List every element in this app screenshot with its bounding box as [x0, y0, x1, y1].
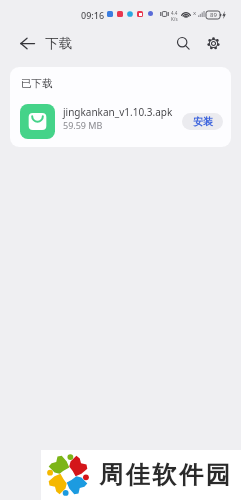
button[interactable]: Search [171, 31, 195, 55]
staticText: K/s [171, 16, 178, 22]
button[interactable]: Settings [201, 31, 225, 55]
button[interactable]: jingkankan_v1.10.3.apk [10, 99, 231, 143]
staticText: 89 [210, 11, 217, 19]
button[interactable]: 安装 [182, 113, 223, 130]
staticText: 已下载 [21, 77, 53, 90]
staticText: 59.59 MB [63, 119, 103, 131]
staticText: jingkankan_v1.10.3.apk [63, 105, 173, 119]
staticText: 安装 [193, 115, 213, 128]
staticText: x [193, 9, 197, 17]
staticText: 09:16 [81, 9, 105, 21]
staticText: 下载 [45, 35, 72, 52]
staticText: 周佳软件园 [99, 460, 233, 490]
button[interactable]: Back [15, 31, 39, 55]
staticText: 4.4 [171, 10, 178, 16]
